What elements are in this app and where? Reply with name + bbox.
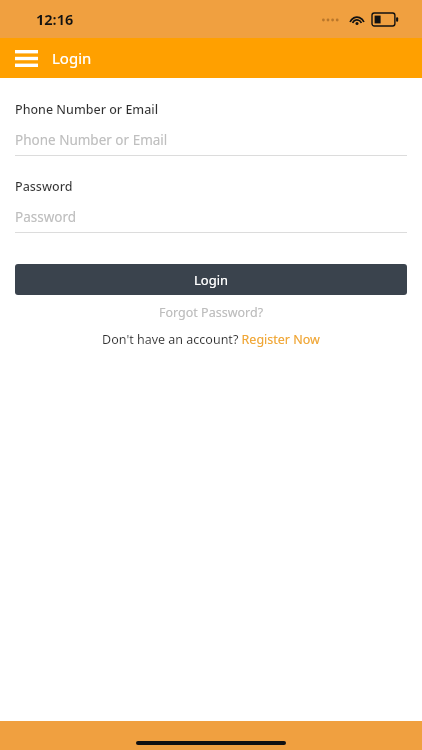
staticText: Password [15, 208, 77, 226]
staticText: Login [194, 271, 229, 289]
button[interactable]: Forgot Password? [0, 304, 422, 321]
staticText: Don't have an account? Register Now [102, 331, 320, 348]
button[interactable]: Login [15, 264, 407, 295]
button[interactable]: Password [15, 207, 407, 227]
staticText: Login [52, 48, 92, 68]
staticText: Password [15, 178, 73, 195]
button[interactable]: Phone Number or Email [15, 130, 407, 150]
button[interactable]: Don't have an account? Register Now [0, 331, 422, 348]
staticText: Phone Number or Email [15, 101, 159, 118]
staticText: 12:16 [36, 9, 74, 29]
staticText: Phone Number or Email [15, 131, 168, 149]
staticText: Forgot Password? [159, 304, 264, 321]
button[interactable]: Open navigation menu [15, 47, 38, 69]
